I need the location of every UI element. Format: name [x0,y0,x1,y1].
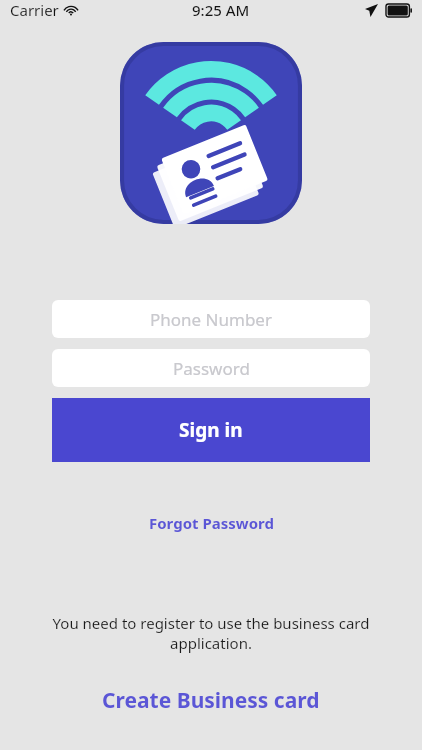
staticText: Password [173,357,250,380]
staticText: Forgot Password [149,513,274,533]
staticText: 9:25 AM [192,0,250,20]
button[interactable]: Phone Number [52,300,370,338]
staticText: Sign in [179,417,243,443]
staticText: You need to register to use the business… [40,613,382,653]
staticText: Carrier [10,0,59,20]
button[interactable]: Sign in [52,398,370,462]
staticText: Create Business card [102,686,320,715]
button[interactable]: Create Business card [90,681,332,720]
button[interactable]: Forgot Password [139,509,284,537]
other: Business card app icon [120,42,302,224]
staticText: Phone Number [150,308,272,331]
button[interactable]: Password [52,349,370,387]
